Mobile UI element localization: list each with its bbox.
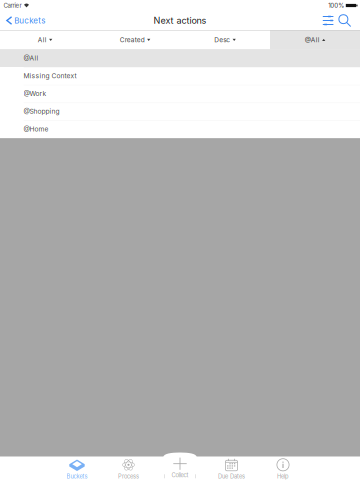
staticText: Missing Context	[24, 72, 77, 80]
button[interactable]: @Home	[0, 120, 360, 138]
button[interactable]: Buckets	[55, 458, 99, 479]
staticText: Help	[277, 473, 289, 480]
staticText: @All	[24, 54, 39, 62]
button[interactable]: Due Dates	[209, 458, 253, 479]
button[interactable]: Missing Context	[0, 67, 360, 85]
button[interactable]: Search	[337, 11, 360, 30]
staticText: Buckets	[14, 16, 45, 25]
button[interactable]: Process	[106, 458, 150, 479]
staticText: 100%	[328, 2, 344, 9]
button[interactable]: Filter	[319, 11, 337, 30]
button[interactable]: Created	[90, 30, 180, 49]
button[interactable]: All	[0, 30, 90, 49]
button[interactable]: @Work	[0, 85, 360, 103]
button[interactable]: @Shopping	[0, 102, 360, 120]
staticText: Carrier	[4, 2, 22, 9]
staticText: @Work	[24, 90, 47, 98]
button[interactable]: Help	[261, 458, 305, 479]
staticText: Collect	[171, 472, 188, 479]
button[interactable]: Collect	[158, 458, 202, 479]
button[interactable]: Buckets	[0, 11, 51, 30]
staticText: @All	[305, 36, 320, 44]
staticText: All	[38, 36, 47, 44]
button[interactable]: @All	[0, 49, 360, 67]
button[interactable]: @All	[270, 30, 360, 49]
staticText: Desc	[214, 36, 230, 44]
staticText: Process	[118, 473, 139, 480]
button[interactable]: Desc	[180, 30, 270, 49]
staticText: Buckets	[66, 473, 87, 480]
staticText: Next actions	[153, 15, 206, 26]
staticText: @Home	[24, 125, 49, 133]
staticText: Created	[120, 36, 145, 44]
staticText: @Shopping	[24, 107, 60, 115]
staticText: Due Dates	[218, 473, 245, 480]
